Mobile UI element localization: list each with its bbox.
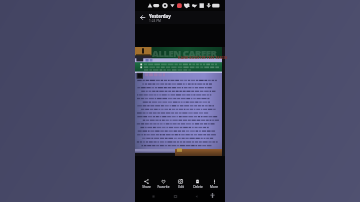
- staticText: Delete: [193, 185, 203, 189]
- staticText: 1:24 PM: [149, 19, 161, 23]
- button[interactable]: Share: [138, 165, 155, 190]
- button[interactable]: Recents: [149, 192, 157, 200]
- button[interactable]: Accessibility: [209, 192, 216, 199]
- button[interactable]: Edit: [172, 165, 189, 190]
- button[interactable]: Back: [192, 192, 200, 200]
- staticText: More: [210, 185, 218, 189]
- button[interactable]: Home: [171, 192, 179, 200]
- button[interactable]: Back: [135, 11, 149, 24]
- staticText: Edit: [178, 185, 184, 189]
- button[interactable]: Delete: [189, 165, 206, 190]
- staticText: Yesterday: [149, 13, 171, 19]
- button[interactable]: More: [206, 165, 222, 190]
- staticText: RANK BOOSTER TEST SERIES: [178, 55, 228, 60]
- staticText: ALLEN CAREER: [152, 47, 217, 60]
- staticText: Favorite: [157, 185, 170, 189]
- button[interactable]: Favorite: [155, 165, 172, 190]
- staticText: Share: [142, 185, 151, 189]
